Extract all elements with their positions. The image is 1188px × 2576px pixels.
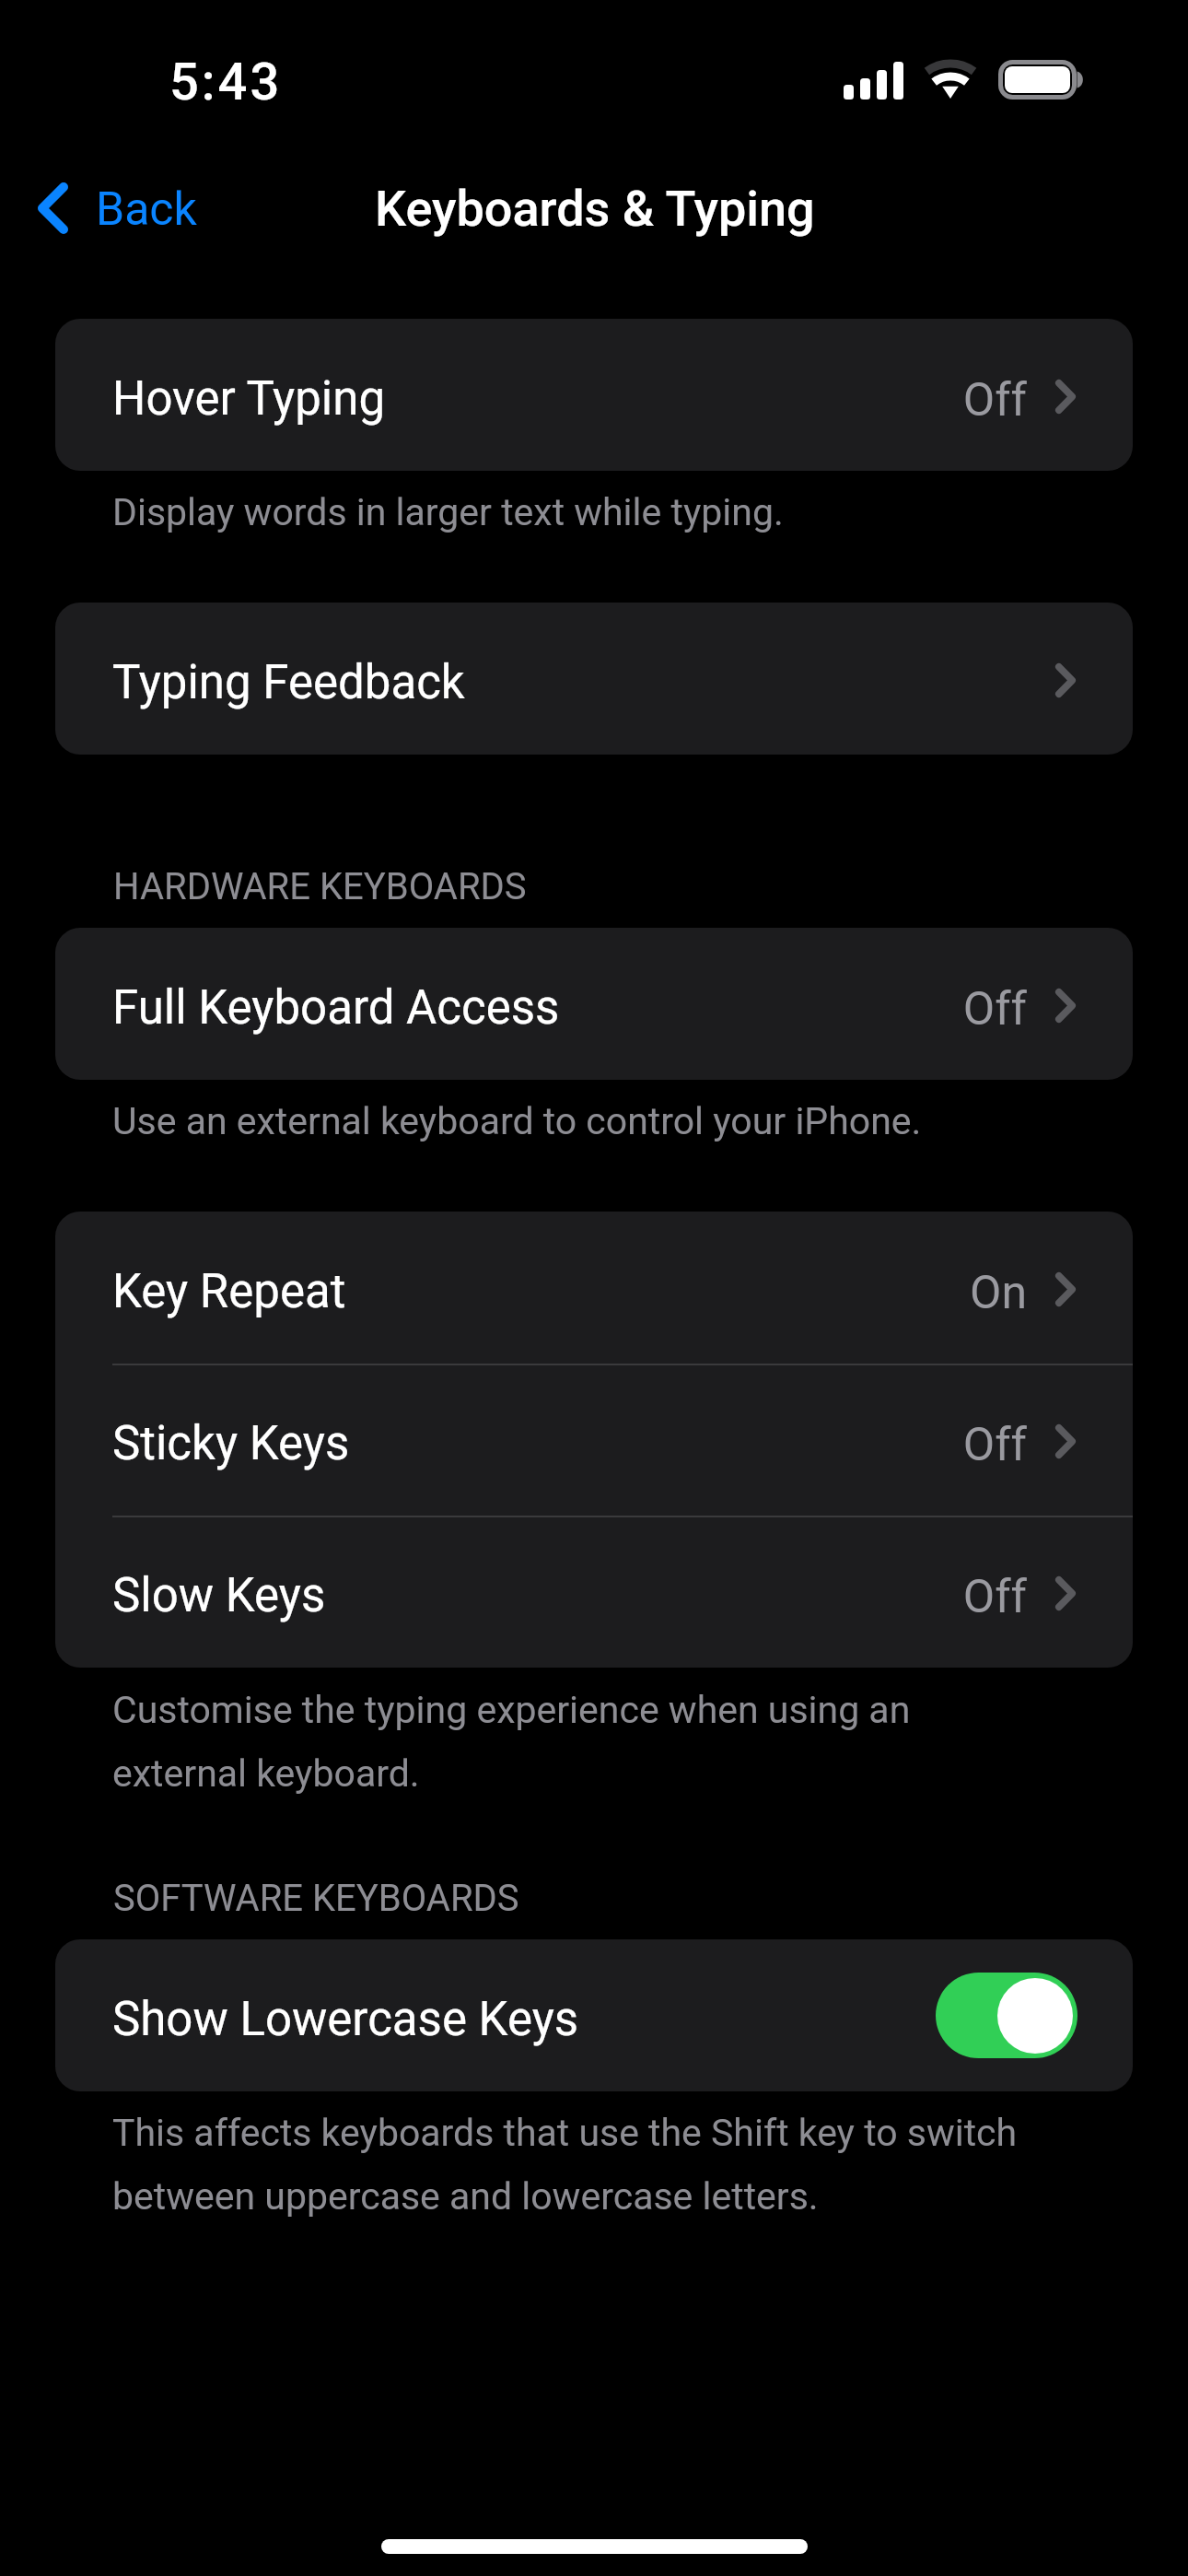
- staticText: Off: [566, 373, 1027, 427]
- staticText: Off: [566, 982, 1027, 1036]
- button[interactable]: Typing Feedback: [55, 603, 1133, 755]
- button[interactable]: Slow Keys: [55, 1516, 1133, 1668]
- staticText: 5:43: [169, 52, 283, 112]
- staticText: Off: [566, 1570, 1027, 1624]
- button[interactable]: Back: [22, 164, 215, 252]
- staticText: HARDWARE KEYBOARDS: [113, 865, 527, 908]
- staticText: SOFTWARE KEYBOARDS: [113, 1877, 519, 1920]
- button[interactable]: Show Lowercase Keys: [55, 1939, 1133, 2091]
- staticText: Typing Feedback: [112, 655, 465, 710]
- staticText: This affects keyboards that use the Shif…: [112, 2111, 1018, 2155]
- staticText: Sticky Keys: [112, 1416, 350, 1471]
- staticText: Back: [96, 182, 197, 237]
- staticText: Keyboards & Typing: [375, 180, 815, 238]
- button[interactable]: Key Repeat: [55, 1212, 1133, 1364]
- staticText: Show Lowercase Keys: [112, 1992, 579, 2047]
- button[interactable]: Show Lowercase Keys, on: [936, 1973, 1077, 2058]
- staticText: Slow Keys: [112, 1568, 326, 1623]
- button[interactable]: Hover Typing: [55, 319, 1133, 471]
- staticText: Hover Typing: [112, 371, 386, 427]
- staticText: Display words in larger text while typin…: [112, 490, 784, 534]
- staticText: Key Repeat: [112, 1264, 346, 1319]
- staticText: On: [566, 1266, 1027, 1320]
- button[interactable]: Full Keyboard Access: [55, 928, 1133, 1080]
- staticText: Use an external keyboard to control your…: [112, 1099, 922, 1143]
- staticText: between uppercase and lowercase letters.: [112, 2174, 819, 2219]
- button[interactable]: Sticky Keys: [55, 1364, 1133, 1516]
- staticText: Full Keyboard Access: [112, 980, 560, 1036]
- staticText: external keyboard.: [112, 1751, 420, 1796]
- staticText: Customise the typing experience when usi…: [112, 1688, 911, 1732]
- staticText: Off: [566, 1418, 1027, 1472]
